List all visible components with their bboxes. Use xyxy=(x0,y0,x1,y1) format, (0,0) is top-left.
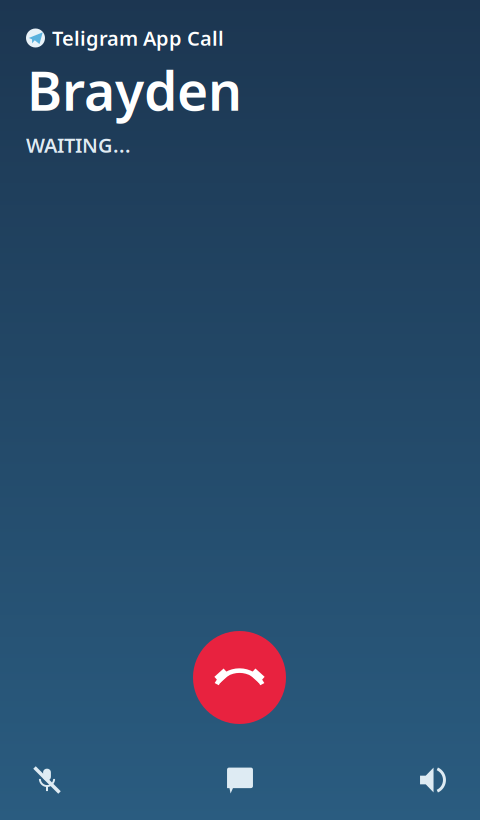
staticText: Teligram App Call xyxy=(52,25,224,51)
button[interactable]: Messages xyxy=(209,751,271,809)
staticText: WAITING... xyxy=(26,132,131,158)
staticText: Brayden xyxy=(27,55,242,125)
button[interactable]: Speaker xyxy=(402,751,464,809)
button[interactable]: Mute xyxy=(16,751,78,809)
button[interactable]: End call xyxy=(193,631,286,724)
